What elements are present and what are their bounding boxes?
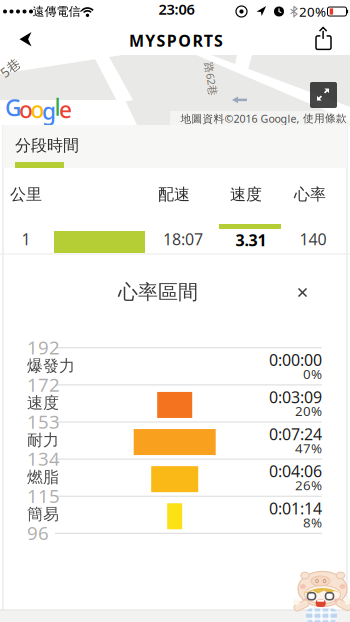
staticText: 172 [27,372,60,397]
staticText: o [19,94,33,124]
staticText: G [5,92,21,122]
button[interactable]: Share [308,20,339,56]
button[interactable]: Back [11,24,40,55]
staticText: 耐力 [27,430,59,450]
staticText: 140 [299,228,326,250]
staticText: 配速 [158,185,190,204]
staticText: 速度 [230,185,262,204]
button[interactable]: 使用條款 [303,112,347,125]
staticText: 使用條款 [303,112,347,125]
staticText: 心率區間 [118,280,198,304]
staticText: 心率 [294,185,326,204]
staticText: 134 [27,446,60,471]
staticText: 23:06 [158,0,194,19]
staticText: 8% [303,513,322,531]
staticText: 遠傳電信 [32,4,80,19]
staticText: 1 [21,228,30,250]
staticText: 5巷 [0,59,20,77]
button[interactable]: 速度 [230,185,262,204]
staticText: 地圖資料©2016 Google, [180,111,299,126]
staticText: e [59,94,72,124]
staticText: l [54,92,60,122]
staticText: 0:01:14 [269,498,322,519]
staticText: 18:07 [163,228,203,250]
staticText: 115 [27,483,60,508]
staticText: 26% [295,476,322,494]
staticText: 分段時間 [15,136,79,155]
staticText: 0:07:24 [269,423,322,445]
staticText: o [30,94,44,124]
staticText: 192 [27,335,60,360]
button[interactable]: Close [290,280,314,304]
staticText: 爆發力 [27,356,75,376]
staticText: 20% [299,3,326,20]
staticText: 0:00:00 [269,349,322,370]
staticText: 簡易 [27,504,59,524]
staticText: 速度 [27,393,59,413]
staticText: 路62巷 [194,72,228,86]
staticText: 3.31 [235,229,266,251]
button[interactable]: Expand map [310,82,337,108]
staticText: g [42,96,56,126]
staticText: 公里 [10,185,42,204]
staticText: 0:03:09 [269,386,322,407]
staticText: 0% [303,365,322,383]
staticText: MYSPORTS [129,30,223,51]
staticText: 20% [295,402,322,420]
staticText: 0:04:06 [269,460,322,482]
staticText: 153 [27,409,60,434]
staticText: 47% [295,439,322,457]
staticText: 燃脂 [27,467,59,487]
staticText: 96 [27,520,49,545]
